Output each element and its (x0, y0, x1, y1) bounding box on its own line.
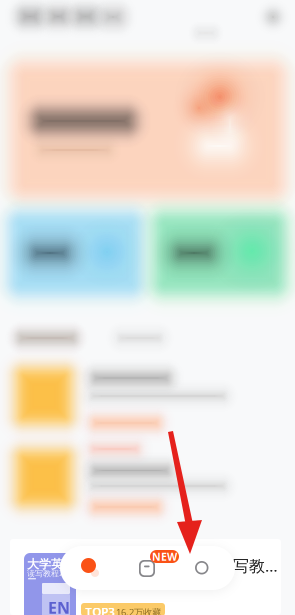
button[interactable] (10, 61, 286, 199)
button[interactable] (0, 444, 295, 520)
button[interactable]: Notes (133, 555, 161, 583)
button[interactable] (8, 211, 143, 296)
button[interactable]: Search (258, 2, 288, 32)
staticText: 写教… (233, 555, 278, 576)
staticText: TOP3 (85, 604, 115, 615)
staticText: 读写教程2 (27, 568, 64, 579)
button[interactable]: Home (78, 554, 106, 582)
staticText: 16.2万收藏 (116, 606, 161, 615)
staticText: 大学英语 (27, 557, 75, 572)
button[interactable] (0, 362, 295, 438)
staticText: EN (48, 597, 70, 615)
button[interactable]: Profile (188, 554, 216, 582)
button[interactable] (152, 211, 287, 296)
staticText: NEW (152, 549, 177, 564)
